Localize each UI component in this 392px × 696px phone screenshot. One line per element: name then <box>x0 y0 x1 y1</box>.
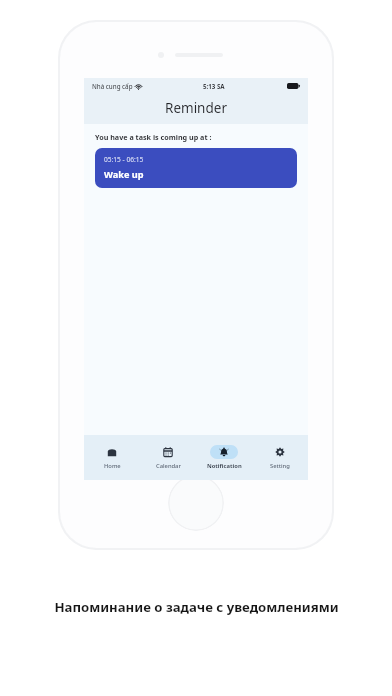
staticText: Setting <box>270 462 290 470</box>
button[interactable]: 05:15 - 06:15 <box>95 148 297 188</box>
staticText: Notification <box>207 462 242 470</box>
staticText: 5:13 SA <box>203 82 225 90</box>
button[interactable]: Calendar <box>140 435 196 480</box>
staticText: Wake up <box>104 168 144 181</box>
staticText: Напоминание о задаче с уведомлениями <box>54 598 339 616</box>
button[interactable]: Setting <box>252 435 308 480</box>
staticText: Home <box>104 462 121 470</box>
staticText: Reminder <box>165 99 227 117</box>
button[interactable]: Notification <box>196 435 252 480</box>
staticText: You have a task is coming up at : <box>95 132 212 142</box>
staticText: Nhà cung cấp <box>92 82 133 90</box>
staticText: 05:15 - 06:15 <box>104 155 144 164</box>
staticText: Calendar <box>156 462 181 470</box>
button[interactable]: Home <box>84 435 140 480</box>
